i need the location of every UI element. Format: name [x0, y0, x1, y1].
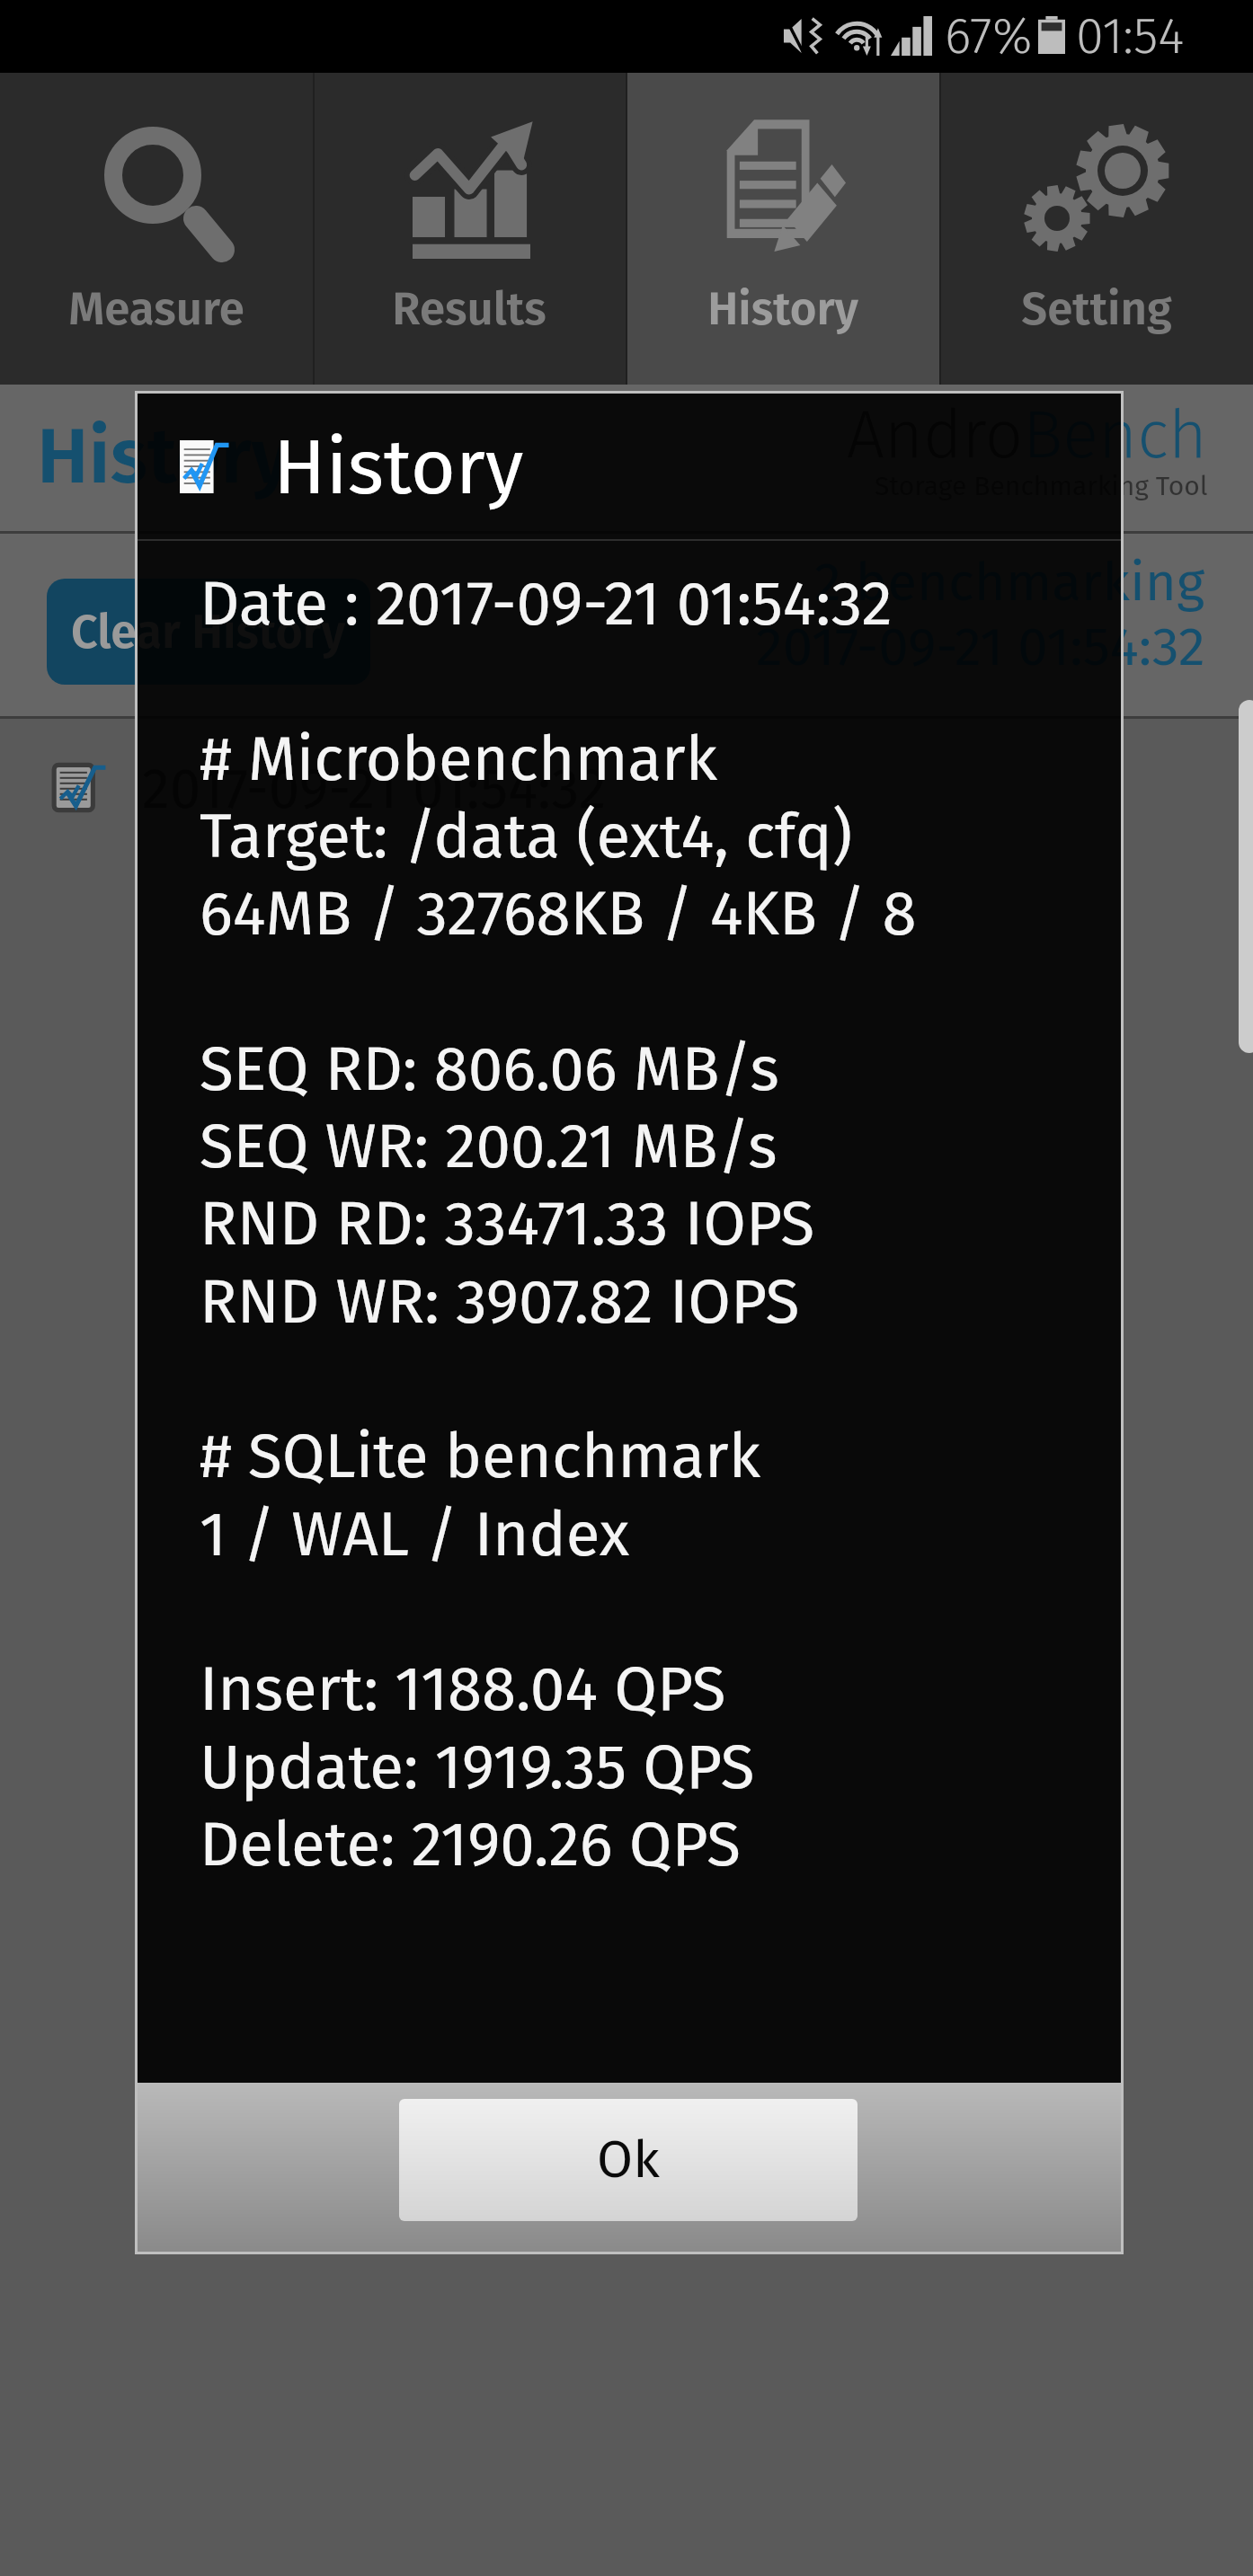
staticText: Insert: 1188.04 QPS — [200, 1651, 726, 1726]
staticText: # Microbenchmark — [200, 721, 718, 796]
staticText: SEQ RD: 806.06 MB/s — [200, 1031, 779, 1106]
staticText: Results — [392, 281, 547, 336]
staticText: Storage Benchmarking Tool — [875, 470, 1208, 502]
staticText: # SQLite benchmark — [200, 1419, 760, 1493]
button[interactable]: History — [37, 411, 291, 503]
staticText: 2 benchmarking — [814, 550, 1205, 615]
staticText: 1 / WAL / Index — [200, 1497, 630, 1571]
button[interactable]: Results — [313, 73, 626, 385]
staticText: Bench — [1023, 395, 1208, 475]
button[interactable]: History — [626, 73, 939, 385]
button[interactable]: Measure — [0, 73, 313, 385]
staticText: Update: 1919.35 QPS — [200, 1730, 755, 1804]
staticText: History — [707, 281, 858, 336]
staticText: SEQ WR: 200.21 MB/s — [200, 1109, 778, 1183]
staticText: RND WR: 3907.82 IOPS — [200, 1264, 800, 1339]
button[interactable]: Ok — [399, 2099, 858, 2221]
staticText: 01:54 — [1076, 6, 1185, 66]
button[interactable] — [0, 707, 1253, 869]
staticText: Date : 2017-09-21 01:54:32 — [200, 566, 893, 641]
staticText: 2017-09-21 01:54:32 — [756, 615, 1205, 679]
staticText: Setting — [1021, 281, 1172, 336]
staticText: RND RD: 33471.33 IOPS — [200, 1186, 815, 1261]
button[interactable]: Clear History — [47, 579, 370, 685]
staticText: 64MB / 32768KB / 4KB / 8 — [200, 876, 917, 951]
staticText: 2017-09-21 01:54:32 — [142, 756, 607, 822]
staticText: Target: /data (ext4, cfq) — [200, 799, 853, 873]
staticText: 67% — [945, 6, 1033, 66]
staticText: History — [273, 421, 524, 514]
staticText: Measure — [68, 281, 244, 336]
staticText: Clear History — [71, 604, 346, 659]
staticText: Ok — [597, 2129, 660, 2191]
staticText: Delete: 2190.26 QPS — [200, 1807, 741, 1881]
button[interactable]: Setting — [939, 73, 1253, 385]
